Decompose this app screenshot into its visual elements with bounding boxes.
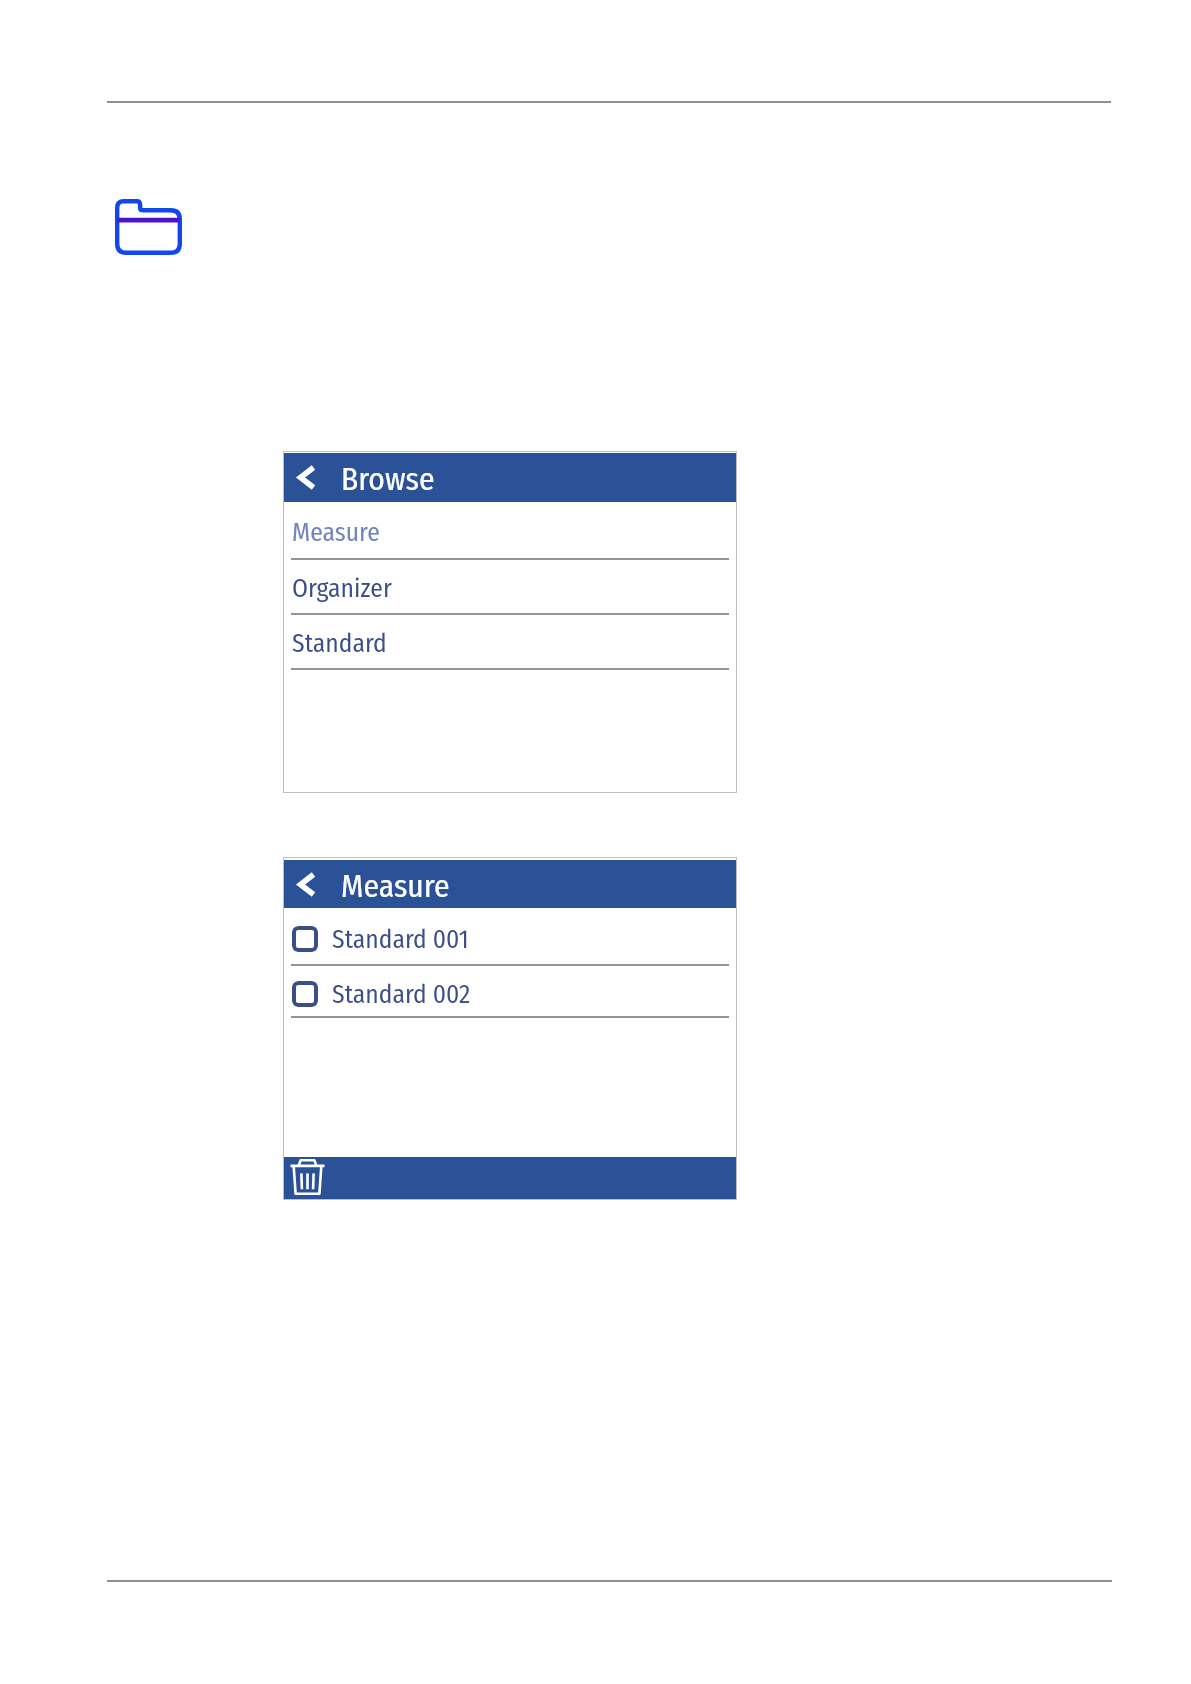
button[interactable]: Standard 002 bbox=[283, 966, 737, 1018]
button[interactable]: Measure bbox=[283, 502, 737, 560]
staticText: Measure bbox=[292, 517, 380, 548]
staticText: Measure bbox=[341, 868, 450, 906]
staticText: Standard 001 bbox=[332, 924, 469, 955]
button[interactable]: Back bbox=[287, 860, 327, 908]
button[interactable]: Organizer bbox=[283, 560, 737, 615]
other: Folder bbox=[115, 199, 182, 255]
staticText: Standard bbox=[292, 628, 387, 659]
button[interactable]: Standard bbox=[283, 615, 737, 670]
staticText: Organizer bbox=[292, 573, 392, 604]
staticText: Browse bbox=[341, 461, 435, 499]
staticText: Standard 002 bbox=[332, 979, 471, 1010]
button[interactable]: Delete bbox=[283, 1157, 332, 1200]
button[interactable]: Back bbox=[287, 453, 327, 502]
button[interactable]: Standard 001 bbox=[283, 908, 737, 966]
